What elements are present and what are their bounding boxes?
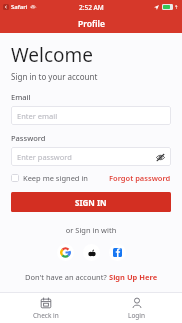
staticText: ⇡ <box>174 4 179 10</box>
staticText: Welcome <box>11 42 94 68</box>
staticText: or Sign in with <box>0 225 182 235</box>
staticText: Keep me signed in <box>23 173 88 183</box>
staticText: Forgot password <box>109 173 171 183</box>
staticText: Sign Up Here <box>109 272 158 282</box>
staticText: Sign in to your account <box>11 71 98 82</box>
staticText: Password <box>11 133 46 143</box>
button[interactable]: Forgot password <box>109 173 171 183</box>
staticText: Profile <box>78 18 105 30</box>
button[interactable]: Check in <box>0 293 91 323</box>
button[interactable]: Sign in with Google <box>57 244 74 261</box>
staticText: Email <box>11 92 31 102</box>
staticText: Login <box>128 311 146 320</box>
staticText: Enter password <box>17 152 72 162</box>
staticText: Don't have an account? <box>25 272 109 282</box>
button[interactable]: Enter email <box>11 106 171 125</box>
button[interactable]: SIGN IN <box>11 192 171 212</box>
button[interactable]: Enter password <box>11 147 171 166</box>
staticText: Safari <box>11 3 28 11</box>
button[interactable]: Sign in with Apple <box>83 244 100 261</box>
button[interactable]: Login <box>91 293 182 323</box>
staticText: 2:52 AM <box>79 3 104 12</box>
staticText: Check in <box>33 311 59 320</box>
staticText: SIGN IN <box>75 197 107 208</box>
button[interactable]: Sign Up Here <box>109 272 158 282</box>
button[interactable]: Keep me signed in <box>11 173 88 183</box>
button[interactable]: Show password <box>155 152 165 162</box>
staticText: Enter email <box>17 111 58 121</box>
button[interactable]: Sign in with Facebook <box>109 244 126 261</box>
